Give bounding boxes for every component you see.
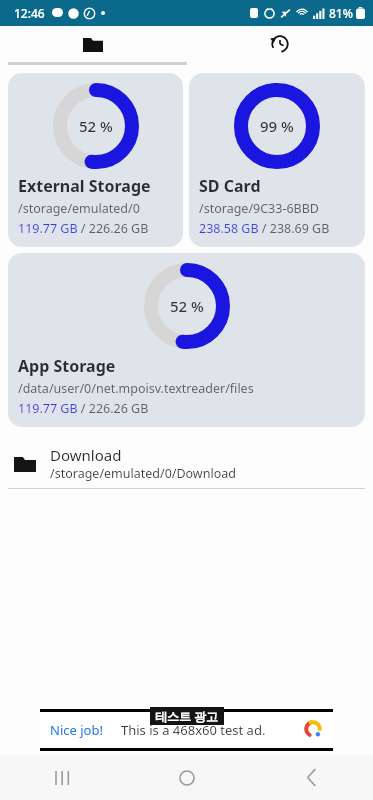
staticText: /data/user/0/net.mpoisv.textreader/files bbox=[18, 380, 254, 397]
staticText: 119.77 GB / 226.26 GB bbox=[18, 400, 149, 417]
staticText: This is a 468x60 test ad. bbox=[121, 721, 266, 739]
staticText: /storage/emulated/0/Download bbox=[50, 465, 236, 482]
button[interactable]: 52 % bbox=[8, 73, 183, 247]
staticText: SD Card bbox=[199, 175, 261, 197]
button[interactable]: 52 % bbox=[8, 253, 365, 427]
button[interactable]: 99 % bbox=[189, 73, 365, 247]
staticText: External Storage bbox=[18, 175, 151, 197]
staticText: Download bbox=[50, 445, 122, 465]
button[interactable]: Home bbox=[125, 755, 249, 800]
button[interactable]: Files bbox=[0, 26, 186, 62]
button[interactable]: Nice job! bbox=[40, 709, 333, 751]
staticText: 52 % bbox=[79, 116, 113, 136]
button[interactable]: Recent apps bbox=[0, 755, 125, 800]
staticText: 테스트 광고 bbox=[155, 708, 219, 724]
staticText: 238.58 GB / 238.69 GB bbox=[199, 220, 330, 237]
staticText: 12:46 bbox=[14, 5, 45, 21]
button[interactable]: History bbox=[186, 26, 373, 62]
staticText: /storage/emulated/0 bbox=[18, 200, 140, 217]
staticText: App Storage bbox=[18, 355, 116, 377]
button[interactable]: Back bbox=[249, 755, 373, 800]
staticText: 119.77 GB / 226.26 GB bbox=[18, 220, 149, 237]
staticText: Nice job! bbox=[50, 721, 103, 739]
button[interactable]: Download bbox=[0, 439, 373, 488]
staticText: 81% bbox=[329, 5, 353, 21]
staticText: /storage/9C33-6BBD bbox=[199, 200, 319, 217]
staticText: 52 % bbox=[170, 296, 204, 316]
staticText: 99 % bbox=[260, 116, 294, 136]
